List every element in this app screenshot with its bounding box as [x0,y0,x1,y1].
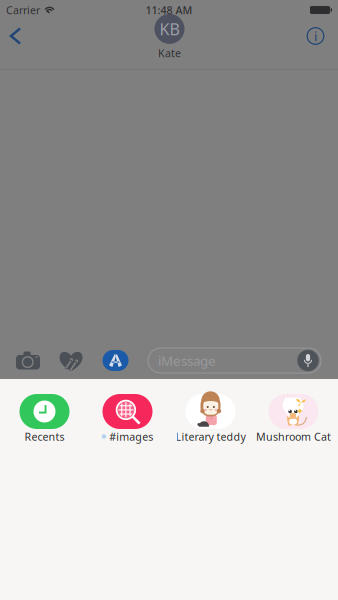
staticText: 11:48 AM [145,3,192,17]
staticText: Kate [158,46,181,60]
button[interactable]: Recents [3,394,86,442]
staticText: Carrier [6,3,40,17]
button[interactable]: KB [121,14,217,60]
staticText: #images [109,429,153,444]
staticText: i [314,27,317,45]
button[interactable]: Mushroom Cat [252,394,335,442]
staticText: Literary teddy [175,429,245,444]
staticText: Recents [24,429,64,444]
button[interactable]: Camera [10,340,46,380]
button[interactable]: Digital Touch [53,341,89,381]
staticText: iMessage [158,352,216,369]
button[interactable]: Dictate [296,348,320,372]
button[interactable]: Literary teddy [169,394,252,442]
button[interactable]: App Store [97,340,133,380]
staticText: KB [159,18,179,39]
button[interactable]: Details [298,17,332,55]
staticText: Mushroom Cat [256,429,331,444]
button[interactable]: Back [0,17,32,55]
button[interactable]: #images [86,394,169,442]
